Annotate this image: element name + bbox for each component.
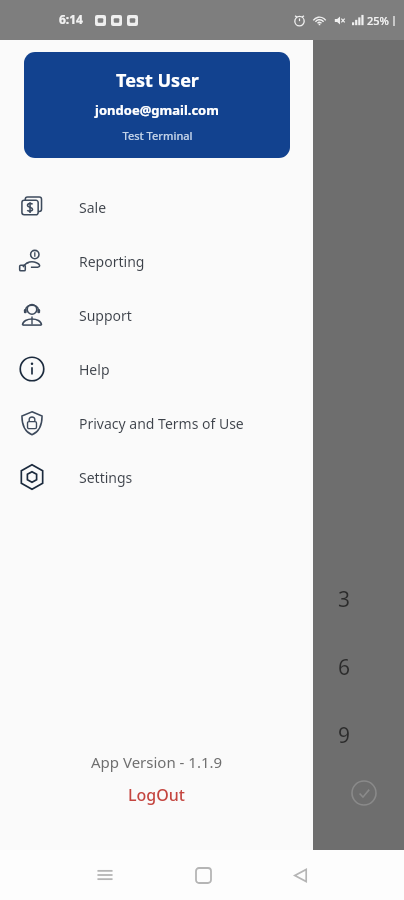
staticText: Support — [79, 306, 132, 325]
staticText: 6 — [338, 653, 351, 682]
staticText: LogOut — [128, 784, 185, 806]
button[interactable]: Reporting — [0, 234, 313, 288]
staticText: Test Terminal — [122, 128, 193, 143]
staticText: Reporting — [79, 252, 145, 271]
button[interactable]: Settings — [0, 450, 313, 504]
button[interactable]: Test User — [24, 52, 290, 158]
staticText: Sale — [79, 198, 107, 217]
button[interactable]: Privacy and Terms of Use — [0, 396, 313, 450]
staticText: Privacy and Terms of Use — [79, 414, 244, 433]
button[interactable]: Sale — [0, 180, 313, 234]
button[interactable]: LogOut — [0, 778, 313, 812]
button[interactable]: Recent apps — [85, 855, 125, 895]
staticText: 6:14 — [59, 11, 83, 27]
staticText: Settings — [79, 468, 133, 487]
button[interactable]: Support — [0, 288, 313, 342]
button[interactable]: Back — [280, 855, 320, 895]
staticText: jondoe@gmail.com — [95, 101, 219, 119]
button[interactable]: Home — [183, 855, 223, 895]
staticText: App Version - 1.1.9 — [91, 752, 223, 772]
staticText: Test User — [116, 68, 199, 93]
staticText: Help — [79, 360, 110, 379]
staticText: 25% — [367, 13, 389, 28]
staticText: 3 — [338, 585, 351, 614]
staticText: 9 — [338, 721, 351, 750]
button[interactable]: Help — [0, 342, 313, 396]
